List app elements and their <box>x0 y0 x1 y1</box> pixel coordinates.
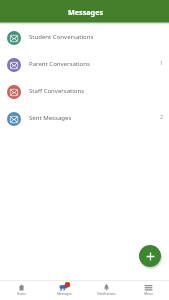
staticText: Home <box>17 292 26 296</box>
button[interactable]: Messages <box>43 281 85 300</box>
staticText: Messages <box>68 7 104 17</box>
button[interactable]: Menu <box>127 281 169 300</box>
staticText: 1 <box>160 59 164 67</box>
button[interactable]: Compose new message <box>139 245 161 267</box>
staticText: Messages <box>57 292 72 296</box>
staticText: 2 <box>160 113 164 121</box>
staticText: Student Conversations <box>29 33 94 41</box>
staticText: Menu <box>144 292 153 296</box>
staticText: Notifications <box>97 292 116 296</box>
staticText: Staff Conversations <box>29 87 85 95</box>
button[interactable]: Notifications <box>85 281 127 300</box>
button[interactable]: Home <box>0 281 43 300</box>
button[interactable]: Student Conversations <box>0 24 169 51</box>
button[interactable]: Parent Conversations <box>0 51 169 78</box>
staticText: Sent Messages <box>29 114 72 122</box>
staticText: Parent Conversations <box>29 60 90 68</box>
button[interactable]: Sent Messages <box>0 105 169 132</box>
button[interactable]: Staff Conversations <box>0 78 169 105</box>
